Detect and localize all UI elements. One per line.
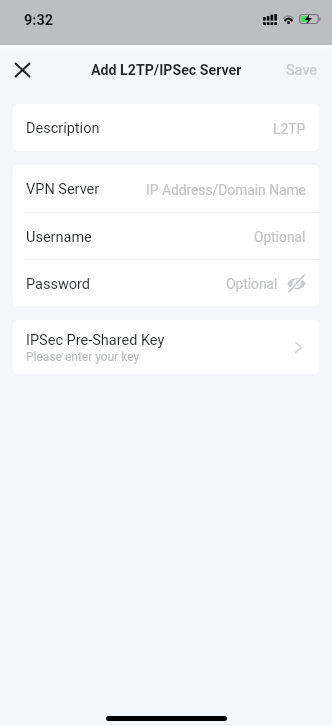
button[interactable]: VPN Server — [13, 165, 319, 212]
staticText: Optional — [254, 229, 306, 245]
staticText: IPSec Pre-Shared Key — [26, 332, 165, 349]
button[interactable]: Close — [6, 54, 38, 86]
staticText: L2TP — [273, 121, 306, 137]
staticText: Password — [26, 276, 91, 293]
button[interactable]: Show password — [286, 273, 306, 293]
staticText: IP Address/Domain Name — [146, 182, 306, 198]
staticText: Please enter your key — [26, 350, 140, 364]
staticText: Save — [286, 62, 318, 79]
staticText: VPN Server — [26, 181, 100, 198]
staticText: Optional — [226, 276, 278, 292]
button[interactable]: IPSec Pre-Shared Key — [13, 320, 319, 374]
button[interactable]: Password — [13, 260, 319, 306]
button[interactable]: Description — [13, 104, 319, 151]
staticText: Add L2TP/IPSec Server — [91, 62, 242, 79]
staticText: Username — [26, 229, 92, 246]
staticText: 9:32 — [24, 12, 54, 29]
button[interactable]: Username — [13, 213, 319, 259]
staticText: Description — [26, 120, 100, 137]
button[interactable]: Save — [278, 56, 326, 85]
